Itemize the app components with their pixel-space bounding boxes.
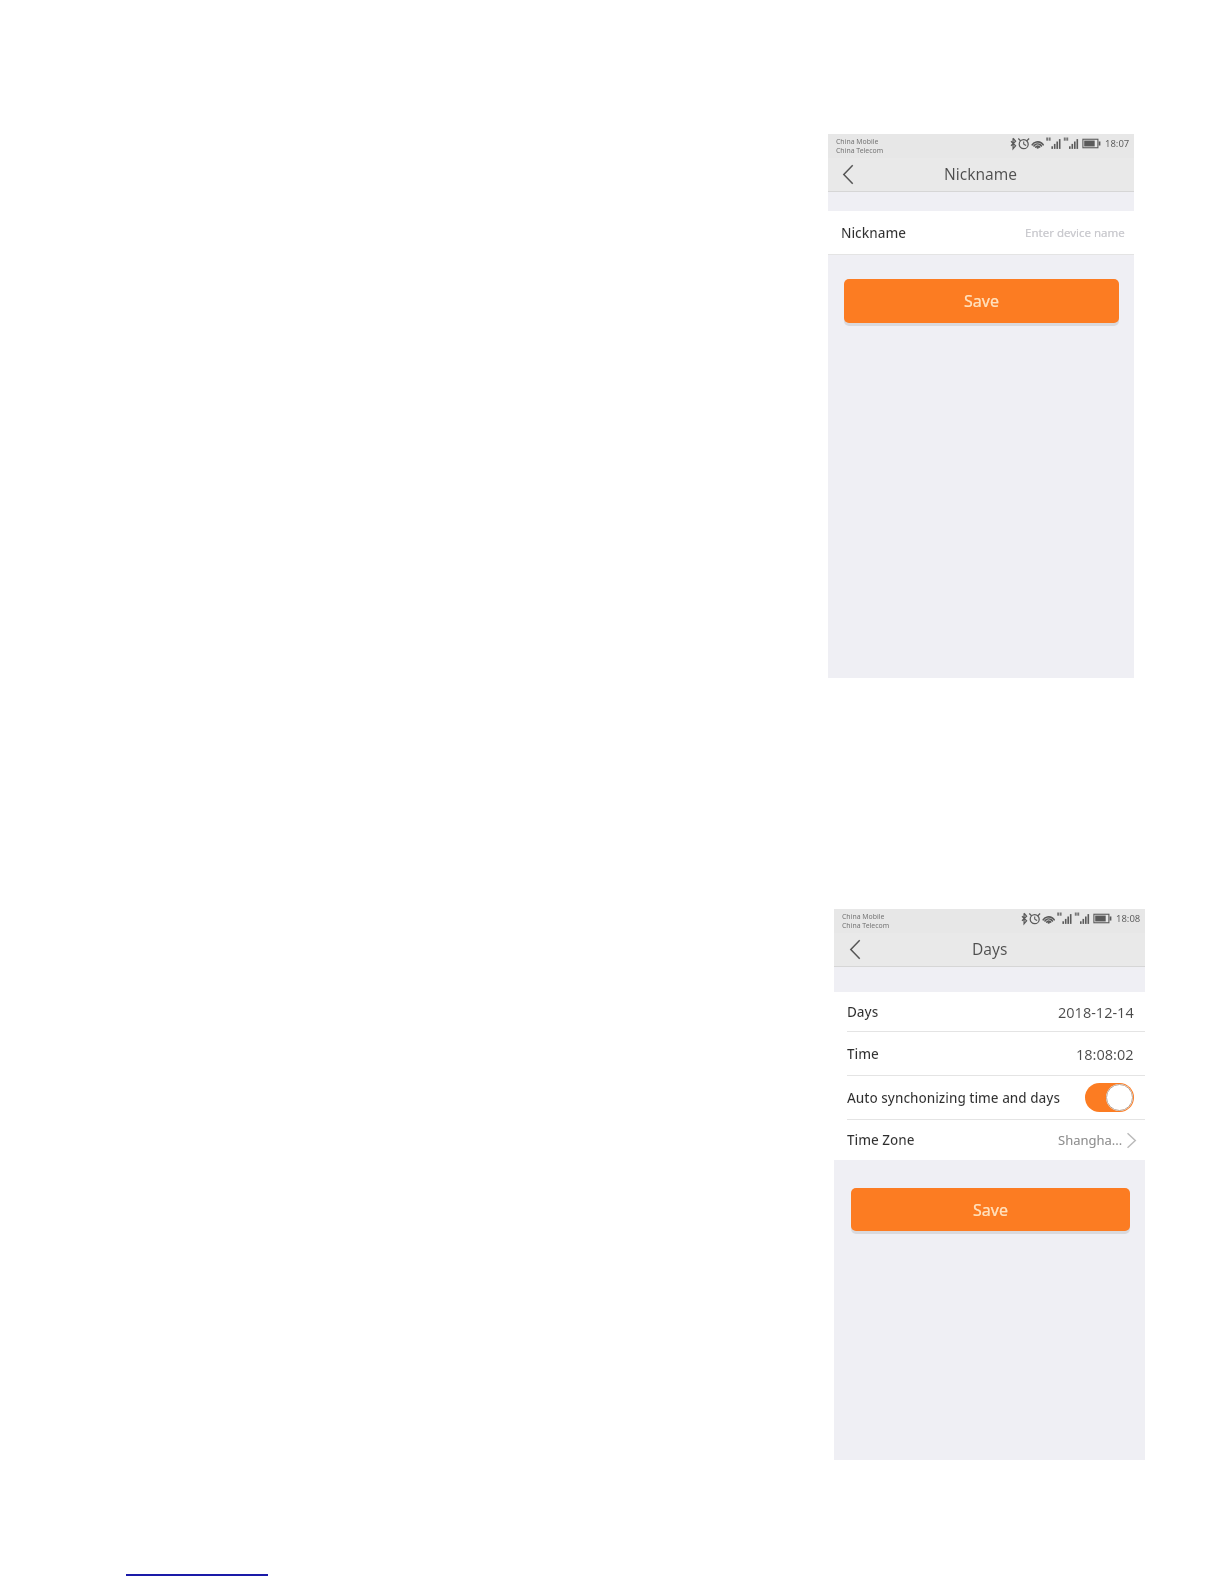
staticText: China Telecom [842,921,890,930]
staticText: Shangha... [1058,1131,1123,1149]
staticText: Time [847,1045,879,1063]
staticText: Nickname [841,224,907,242]
button[interactable]: Nickname [828,211,1134,254]
staticText: Days [847,1003,879,1021]
button[interactable]: Time [834,1032,1145,1075]
staticText: Auto synchonizing time and days [847,1089,1060,1107]
button[interactable]: Auto synchonizing time and days [834,1076,1145,1119]
staticText: Time Zone [847,1131,915,1149]
staticText: 18:08:02 [1076,1044,1134,1064]
staticText: China Mobile [842,912,885,921]
staticText: 2018-12-14 [1058,1002,1134,1022]
button[interactable]: Auto sync toggle [1085,1083,1134,1112]
staticText: Enter device name [1025,225,1125,241]
button[interactable]: Time Zone [834,1120,1145,1160]
staticText: 18:07 [1105,137,1130,150]
staticText: Nickname [944,163,1018,184]
staticText: Save [964,290,999,312]
button[interactable]: Days [834,992,1145,1031]
button[interactable]: Save [851,1188,1130,1231]
button[interactable]: Back [828,158,866,192]
staticText: China Telecom [836,146,884,155]
button[interactable]: Save [844,279,1119,323]
staticText: 18:08 [1116,912,1141,925]
staticText: Save [973,1199,1008,1221]
staticText: Days [972,938,1008,959]
staticText: China Mobile [836,137,879,146]
button[interactable]: Back [834,933,872,967]
